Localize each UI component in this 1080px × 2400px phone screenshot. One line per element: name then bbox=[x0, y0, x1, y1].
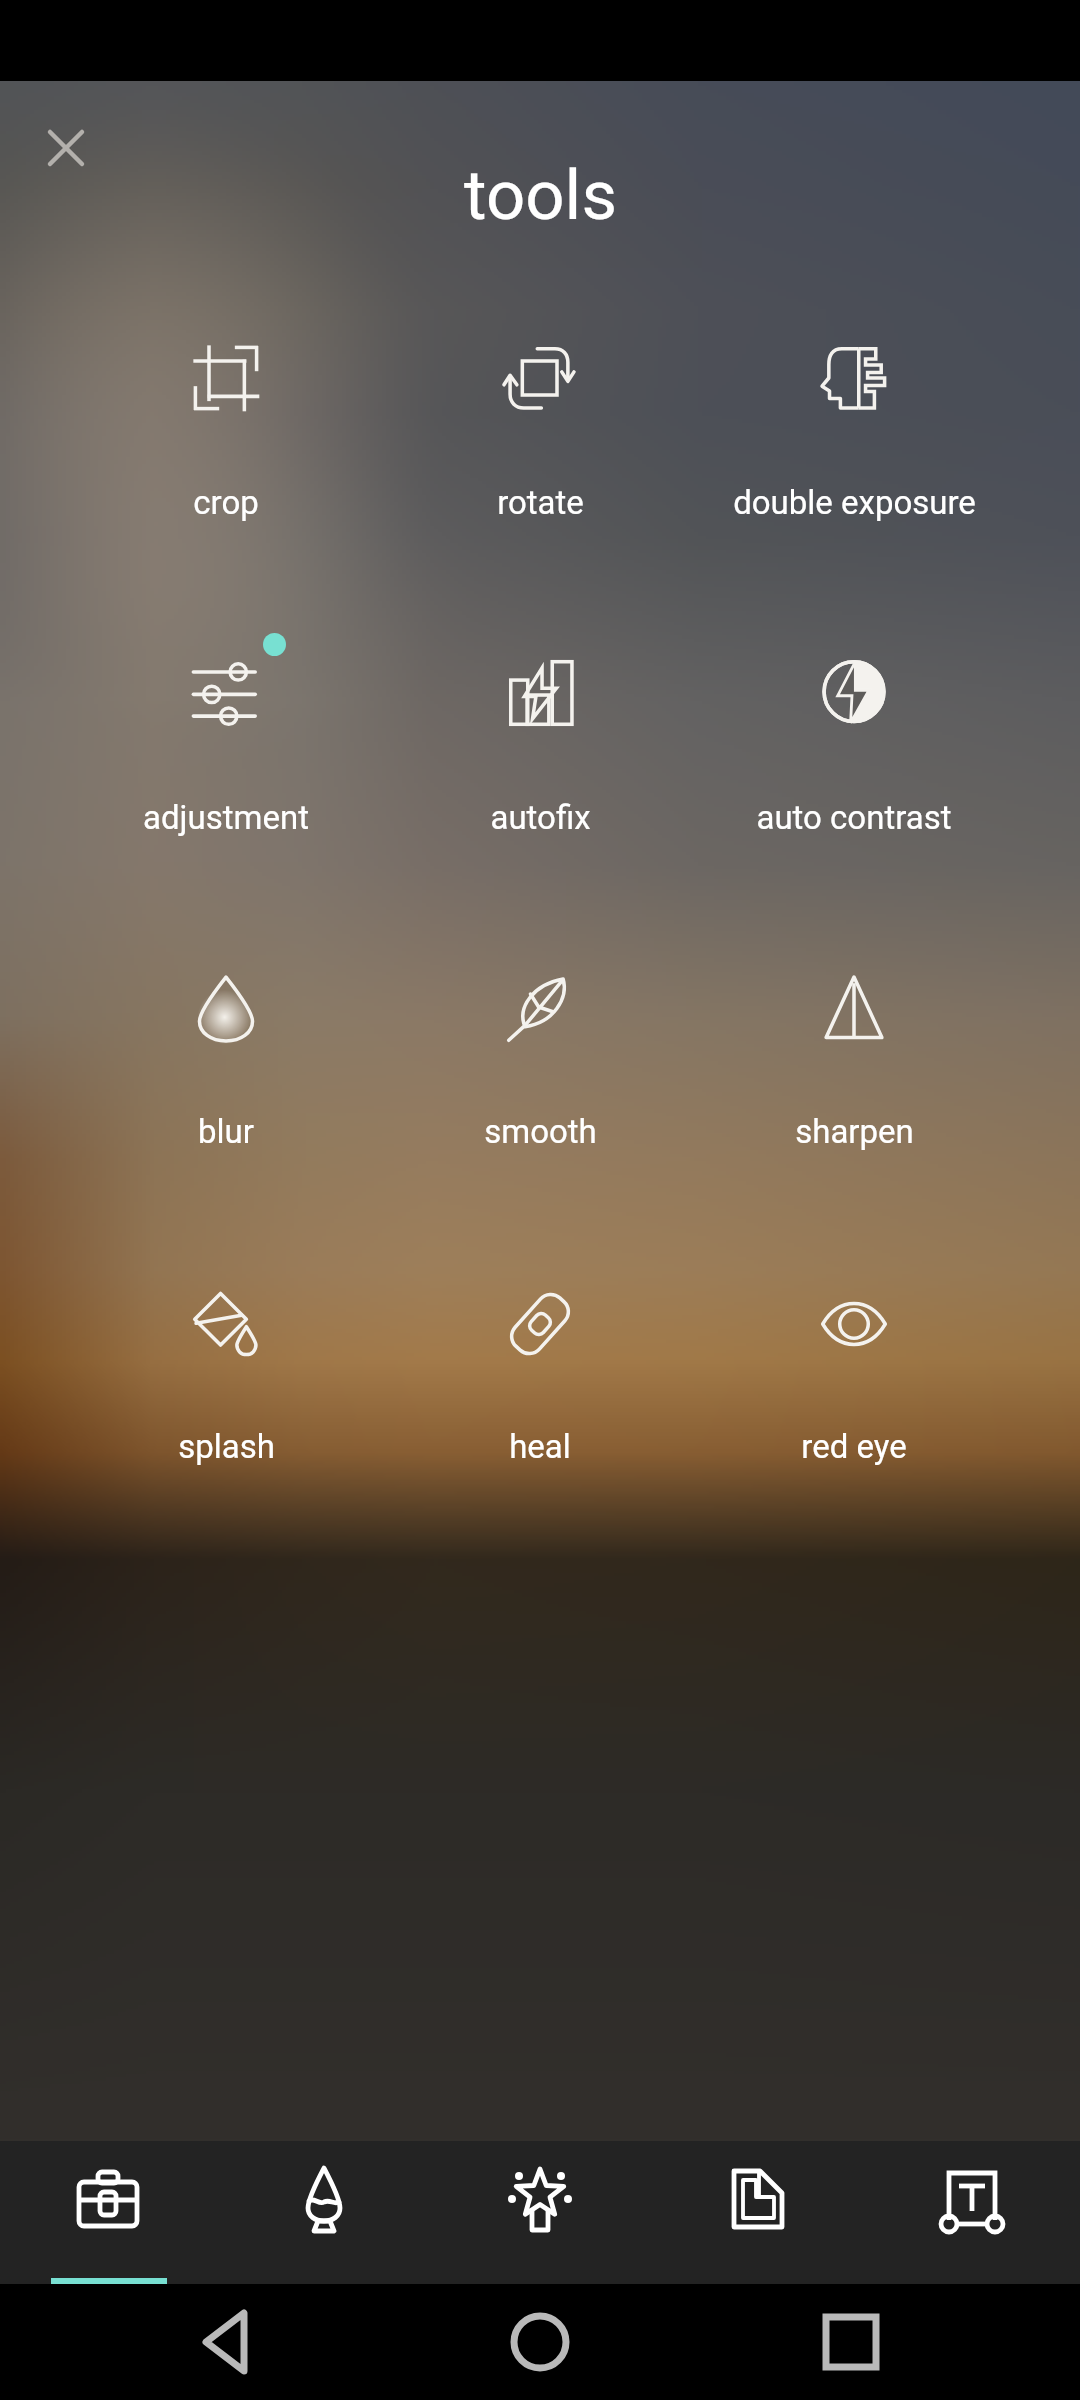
staticText: smooth bbox=[484, 1112, 597, 1151]
button[interactable]: double exposure bbox=[697, 298, 1011, 498]
staticText: sharpen bbox=[795, 1112, 914, 1151]
staticText: heal bbox=[509, 1427, 571, 1466]
button[interactable]: splash bbox=[69, 1244, 383, 1444]
staticText: tools bbox=[464, 155, 617, 236]
button[interactable]: red eye bbox=[697, 1244, 1011, 1444]
button[interactable]: Effects bbox=[432, 2141, 648, 2284]
staticText: double exposure bbox=[733, 483, 976, 522]
staticText: splash bbox=[178, 1427, 275, 1466]
button[interactable]: Close bbox=[24, 106, 108, 190]
button[interactable]: heal bbox=[383, 1244, 697, 1444]
button[interactable]: smooth bbox=[383, 929, 697, 1129]
button[interactable]: rotate bbox=[383, 298, 697, 498]
button[interactable]: Text bbox=[864, 2141, 1080, 2284]
button[interactable]: auto contrast bbox=[697, 613, 1011, 813]
button[interactable]: Frames bbox=[648, 2141, 864, 2284]
staticText: rotate bbox=[497, 483, 584, 522]
staticText: red eye bbox=[801, 1427, 907, 1466]
button[interactable]: adjustment bbox=[69, 613, 383, 813]
button[interactable]: Tools bbox=[0, 2141, 216, 2284]
staticText: crop bbox=[193, 483, 259, 522]
button[interactable]: blur bbox=[69, 929, 383, 1129]
staticText: autofix bbox=[490, 798, 591, 837]
button[interactable]: autofix bbox=[383, 613, 697, 813]
staticText: blur bbox=[198, 1112, 254, 1151]
staticText: adjustment bbox=[143, 798, 309, 837]
button[interactable]: sharpen bbox=[697, 929, 1011, 1129]
button[interactable]: Brush bbox=[216, 2141, 432, 2284]
button[interactable]: crop bbox=[69, 298, 383, 498]
staticText: auto contrast bbox=[756, 798, 952, 837]
